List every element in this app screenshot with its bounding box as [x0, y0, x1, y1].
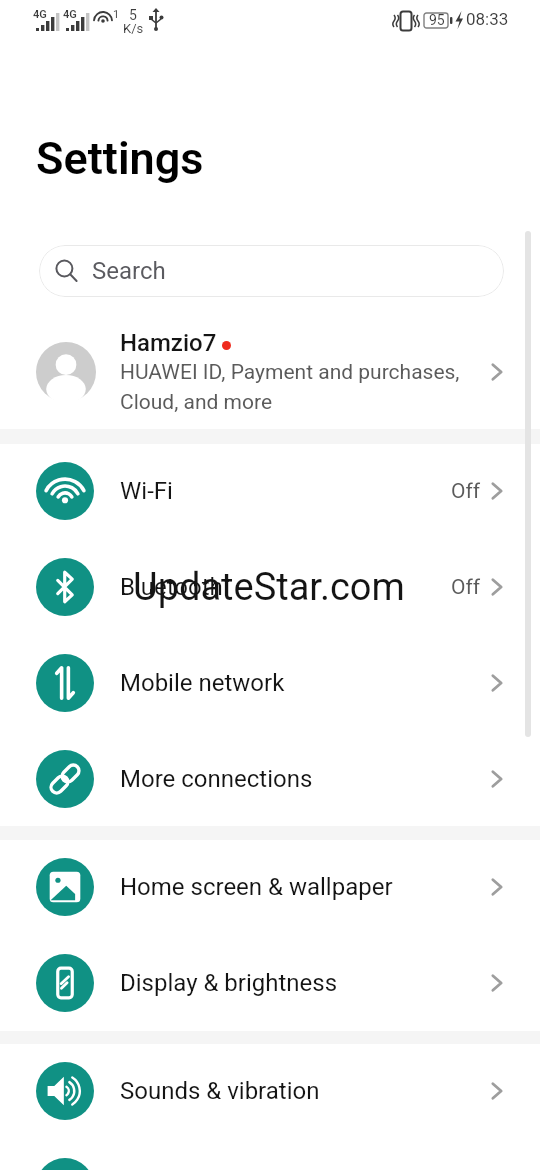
staticText: Mobile network — [120, 669, 484, 697]
staticText: 5 — [129, 7, 137, 23]
staticText: K/s — [123, 21, 144, 36]
button[interactable]: Mobile network — [0, 635, 540, 731]
staticText: 4G — [63, 8, 77, 21]
staticText: Bluetooth — [120, 573, 451, 601]
button[interactable]: More — [0, 1139, 540, 1170]
staticText: More connections — [120, 765, 484, 793]
staticText: 08:33 — [466, 9, 509, 29]
staticText: Off — [451, 479, 481, 504]
staticText: Hamzio7 — [120, 329, 217, 357]
staticText: 95 — [429, 12, 445, 28]
staticText: Off — [451, 575, 481, 600]
staticText: Search — [92, 257, 166, 285]
staticText: 1 — [113, 8, 120, 21]
button[interactable]: Sounds — [0, 1043, 540, 1139]
button[interactable]: Home screen — [0, 839, 540, 935]
button[interactable]: Search — [39, 245, 504, 297]
staticText: HUAWEI ID, Payment and purchases, Cloud,… — [120, 360, 460, 414]
staticText: UpdateStar.com — [133, 565, 405, 610]
button[interactable]: More connections — [0, 731, 540, 827]
button[interactable]: Hamzio7 — [0, 318, 540, 425]
staticText: Sounds & vibration — [120, 1077, 484, 1105]
staticText: 4G — [33, 8, 47, 21]
staticText: Home screen & wallpaper — [120, 873, 484, 901]
button[interactable]: Display — [0, 935, 540, 1031]
staticText: Wi-Fi — [120, 477, 451, 505]
staticText: Display & brightness — [120, 969, 484, 997]
button[interactable]: Bluetooth — [0, 539, 540, 635]
staticText: Settings — [36, 132, 204, 185]
button[interactable]: Wi-Fi — [0, 443, 540, 539]
